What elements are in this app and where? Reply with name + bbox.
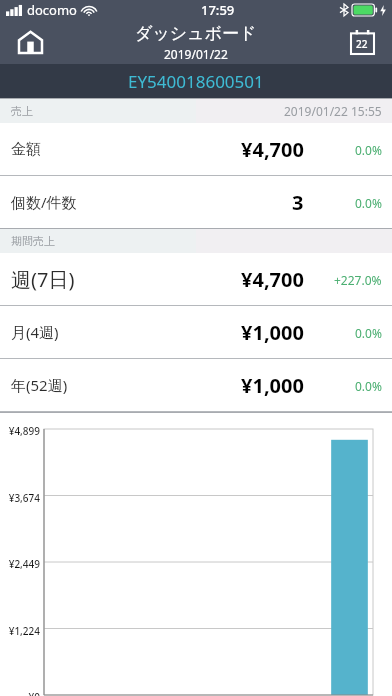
staticText: 0.0% — [355, 325, 382, 341]
staticText: 3 — [292, 189, 304, 216]
staticText: 2019/01/22 15:55 — [284, 103, 382, 119]
staticText: 期間売上 — [11, 234, 55, 248]
button[interactable]: Home — [10, 22, 50, 62]
staticText: 週(7日) — [11, 266, 75, 293]
staticText: +227.0% — [334, 272, 382, 288]
staticText: 2019/01/22 — [164, 46, 228, 62]
button[interactable]: 年(52週) — [0, 359, 392, 411]
staticText: ¥1,224 — [0, 624, 40, 638]
staticText: ¥0 — [0, 690, 40, 696]
staticText: ¥2,449 — [0, 557, 40, 571]
staticText: 個数/件数 — [11, 192, 77, 212]
staticText: ¥1,000 — [241, 372, 304, 399]
staticText: 1/22 火 — [333, 694, 367, 696]
staticText: ¥4,899 — [0, 424, 40, 438]
staticText: ¥4,700 — [241, 266, 304, 293]
staticText: ¥1,000 — [241, 319, 304, 346]
staticText: ¥3,674 — [0, 491, 40, 505]
button[interactable]: EY540018600501 — [0, 64, 392, 98]
staticText: EY540018600501 — [128, 70, 264, 93]
staticText: ダッシュボード — [135, 23, 257, 44]
button[interactable]: 個数/件数 — [0, 176, 392, 228]
staticText: 0.0% — [355, 142, 382, 158]
staticText: 金額 — [11, 140, 41, 159]
staticText: 0.0% — [355, 378, 382, 394]
staticText: ¥4,700 — [241, 136, 304, 163]
button[interactable]: 金額 — [0, 123, 392, 175]
staticText: 月(4週) — [11, 322, 59, 342]
staticText: 年(52週) — [11, 375, 68, 395]
staticText: 0.0% — [355, 195, 382, 211]
staticText: docomo — [27, 1, 77, 19]
button[interactable]: 週(7日) — [0, 253, 392, 305]
staticText: 売上 — [11, 104, 33, 118]
staticText: 22 — [356, 37, 368, 51]
button[interactable]: 月(4週) — [0, 306, 392, 358]
button[interactable]: Calendar — [342, 22, 382, 62]
staticText: 17:59 — [201, 1, 235, 19]
